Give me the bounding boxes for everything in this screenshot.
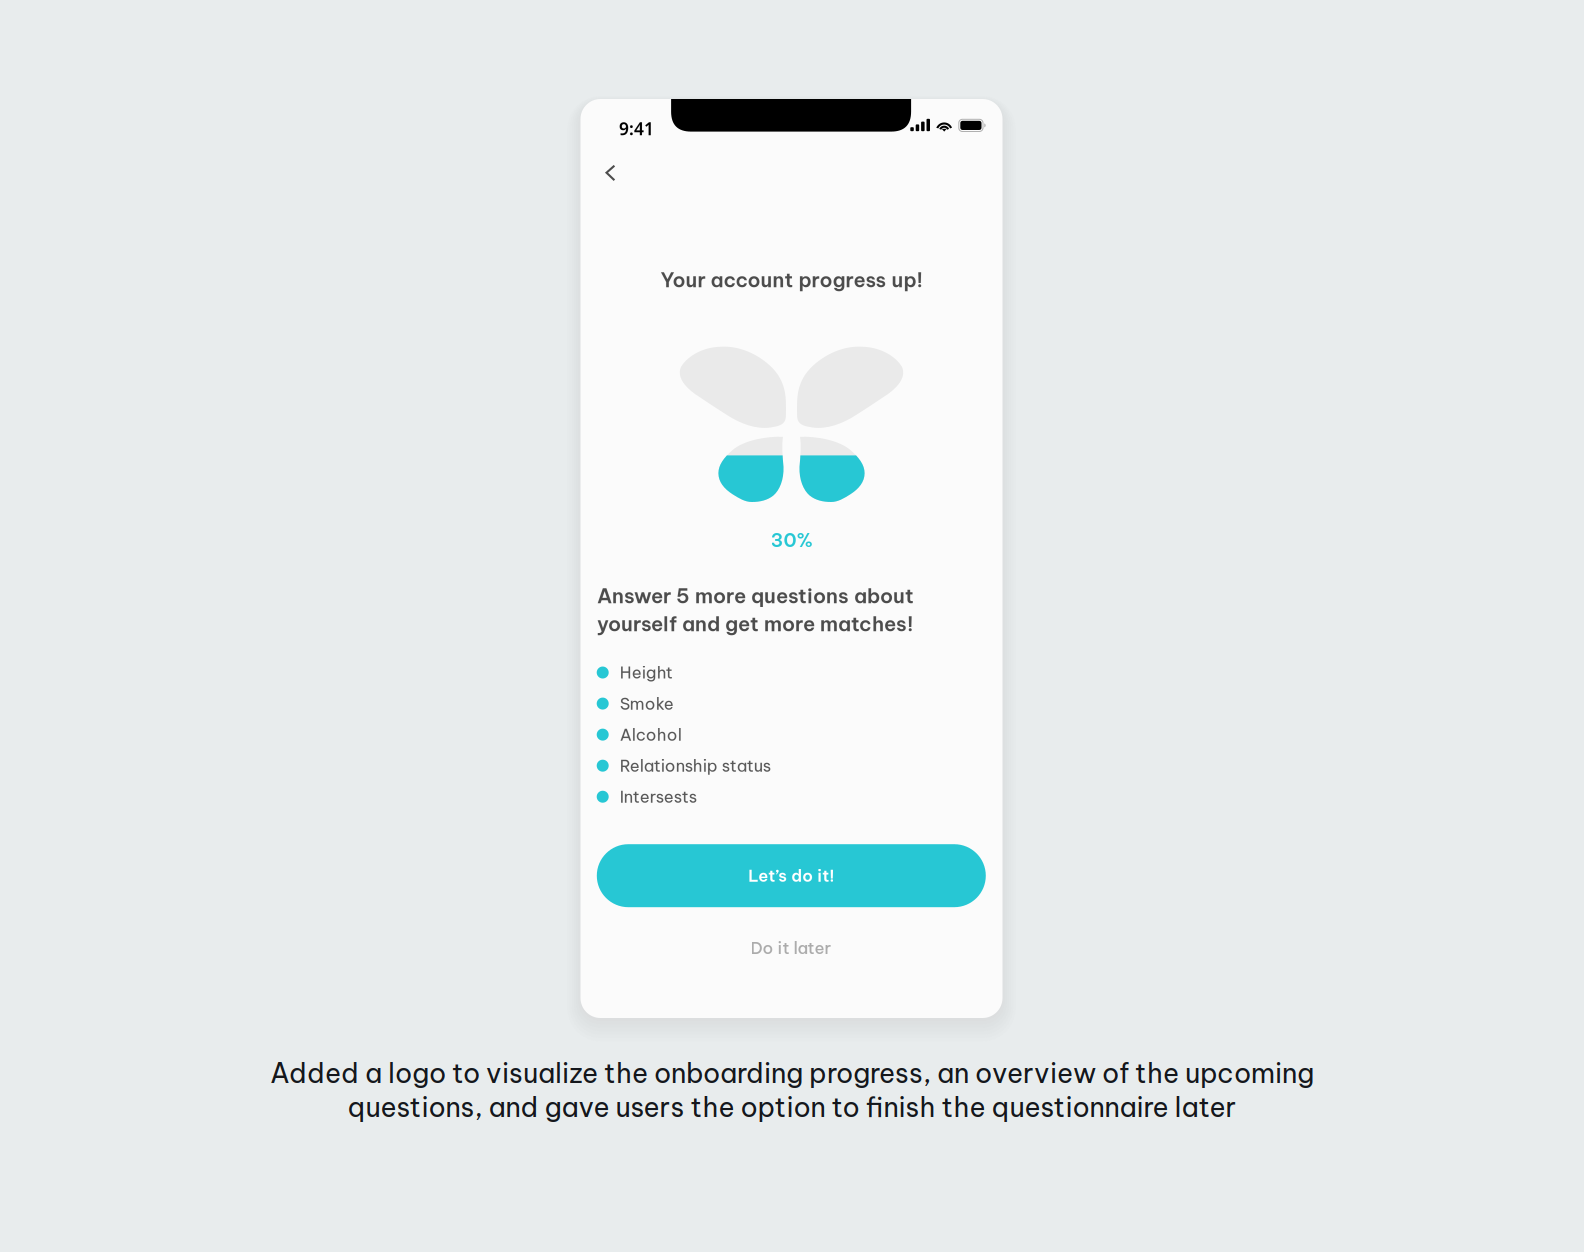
staticText: Answer 5 more questions about	[597, 583, 914, 608]
staticText: questions, and gave users the option to …	[347, 1090, 1236, 1124]
staticText: 30%	[770, 528, 812, 552]
staticText: Intersests	[620, 786, 697, 807]
staticText: Height	[620, 662, 673, 683]
button[interactable]: Let’s do it!	[597, 844, 986, 907]
staticText: Let’s do it!	[748, 865, 834, 886]
staticText: Added a logo to visualize the onboarding…	[270, 1056, 1314, 1090]
staticText: Do it later	[750, 937, 831, 958]
staticText: Smoke	[620, 693, 674, 714]
staticText: 9:41	[619, 117, 654, 140]
button[interactable]: Do it later	[597, 931, 985, 965]
staticText: Alcohol	[620, 724, 682, 745]
staticText: yourself and get more matches!	[597, 611, 913, 637]
staticText: Your account progress up!	[660, 267, 922, 293]
button[interactable]: Back	[593, 144, 637, 188]
staticText: Relationship status	[620, 755, 771, 776]
